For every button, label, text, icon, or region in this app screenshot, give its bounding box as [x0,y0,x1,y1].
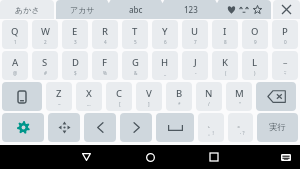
staticText: アカサ [70,5,95,15]
button[interactable]: E [62,20,88,49]
button[interactable]: Back [74,145,98,169]
staticText: E [72,25,78,38]
button[interactable]: G [122,51,148,80]
button[interactable]: Y [152,20,178,49]
button[interactable]: Cursor right [120,113,152,142]
staticText: ・? [238,130,245,136]
button[interactable]: D [62,51,88,80]
staticText: R [102,25,109,38]
staticText: D [72,56,79,69]
staticText: 1 [14,39,17,45]
staticText: 0 [284,39,287,45]
staticText: [ [119,101,121,107]
button[interactable]: 。 [228,113,253,142]
button[interactable]: N [196,82,222,111]
staticText: U [191,25,199,38]
button[interactable]: − [272,51,298,80]
staticText: 、 [207,119,215,129]
staticText: abc [129,4,143,15]
staticText: S [42,56,48,69]
staticText: 。 [237,119,245,129]
staticText: K [222,56,229,69]
button[interactable]: 実行 [257,113,298,142]
button[interactable]: V [136,82,162,111]
button[interactable]: Close keyboard [273,0,300,19]
staticText: 6 [164,39,167,45]
staticText: M [235,87,244,100]
staticText: C [116,87,123,100]
button[interactable]: Settings [2,113,44,142]
button[interactable]: T [122,20,148,49]
staticText: H [161,56,169,69]
button[interactable]: O [242,20,268,49]
button[interactable]: H [152,51,178,80]
staticText: B [176,87,183,100]
staticText: 9 [254,39,257,45]
button[interactable]: X [76,82,102,111]
button[interactable]: B [166,82,192,111]
button[interactable]: Switch input method [274,145,298,169]
staticText: L [252,56,258,69]
button[interactable]: A [2,51,28,80]
button[interactable]: I [212,20,238,49]
staticText: 。! [208,130,214,136]
button[interactable]: Backspace [256,82,296,111]
staticText: W [41,25,50,38]
button[interactable]: U [182,20,208,49]
button[interactable]: Home [138,145,162,169]
staticText: T [132,25,138,38]
staticText: F [102,56,108,69]
staticText: − [283,57,288,68]
staticText: ) [254,70,256,76]
staticText: " [239,101,241,107]
staticText: 3 [74,39,77,45]
staticText: # [44,70,47,76]
button[interactable]: abc [109,0,163,19]
button[interactable]: Cursor left [84,113,116,142]
button[interactable]: S [32,51,58,80]
button[interactable]: Z [46,82,72,111]
staticText: O [251,25,259,38]
staticText: 7 [194,39,197,45]
button[interactable]: 123 [163,0,218,19]
button[interactable]: Switch to 12 key layout [2,82,42,111]
button[interactable]: Move cursor [48,113,80,142]
staticText: & [134,70,138,76]
button[interactable]: Space [156,113,194,142]
staticText: 4 [104,39,107,45]
staticText: % [103,70,107,76]
staticText: 実行 [269,122,286,133]
staticText: Y [162,25,168,38]
staticText: J [194,56,197,69]
staticText: :; [284,69,287,75]
button[interactable]: P [272,20,298,49]
staticText: I [223,25,227,38]
staticText: 8 [224,39,227,45]
button[interactable]: Emoji and symbols [218,0,271,19]
button[interactable]: K [212,51,238,80]
button[interactable]: 、 [198,113,224,142]
button[interactable]: M [226,82,252,111]
button[interactable]: あかさ [0,0,54,19]
staticText: 5 [134,39,137,45]
staticText: A [12,56,19,69]
button[interactable]: F [92,51,118,80]
button[interactable]: L [242,51,268,80]
button[interactable]: C [106,82,132,111]
staticText: _ [164,70,167,76]
staticText: G [132,56,139,69]
staticText: X [86,87,92,100]
staticText: ] [148,101,150,107]
staticText: - [195,70,197,76]
button[interactable]: Recent apps [202,145,226,169]
button[interactable]: アカサ [56,0,109,19]
staticText: ~ [58,101,61,107]
staticText: あかさ [15,5,40,15]
staticText: @ [13,70,18,76]
staticText: Z [56,87,62,100]
button[interactable]: J [182,51,208,80]
button[interactable]: R [92,20,118,49]
button[interactable]: W [32,20,58,49]
button[interactable]: Q [2,20,28,49]
staticText: / [208,101,210,107]
